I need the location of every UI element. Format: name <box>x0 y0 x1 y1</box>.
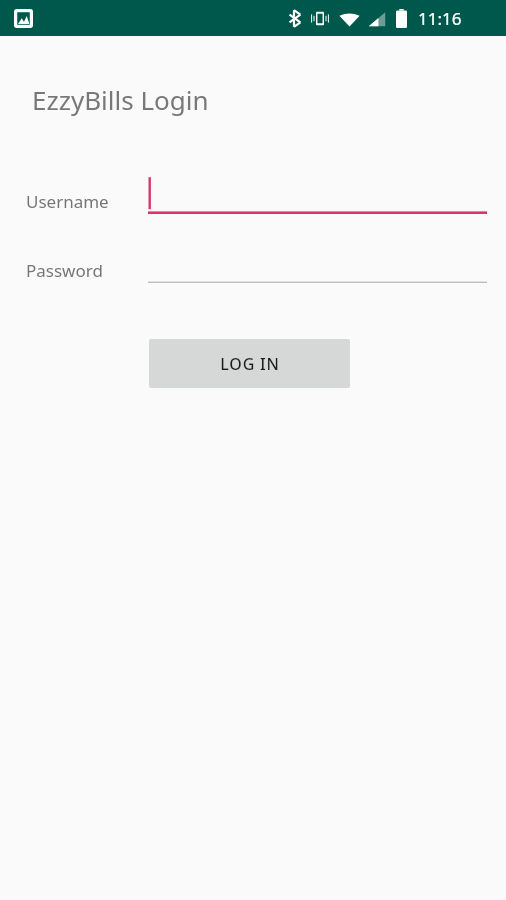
staticText: Password <box>26 259 103 282</box>
other: Image notification <box>14 9 33 28</box>
button[interactable]: LOG IN <box>149 339 350 388</box>
staticText: Username <box>26 190 109 213</box>
staticText: 11:16 <box>418 7 462 30</box>
staticText: EzzyBills Login <box>32 82 209 117</box>
button[interactable]: Username input field <box>148 174 487 214</box>
staticText: LOG IN <box>220 353 280 375</box>
button[interactable]: Password input field <box>148 245 487 283</box>
